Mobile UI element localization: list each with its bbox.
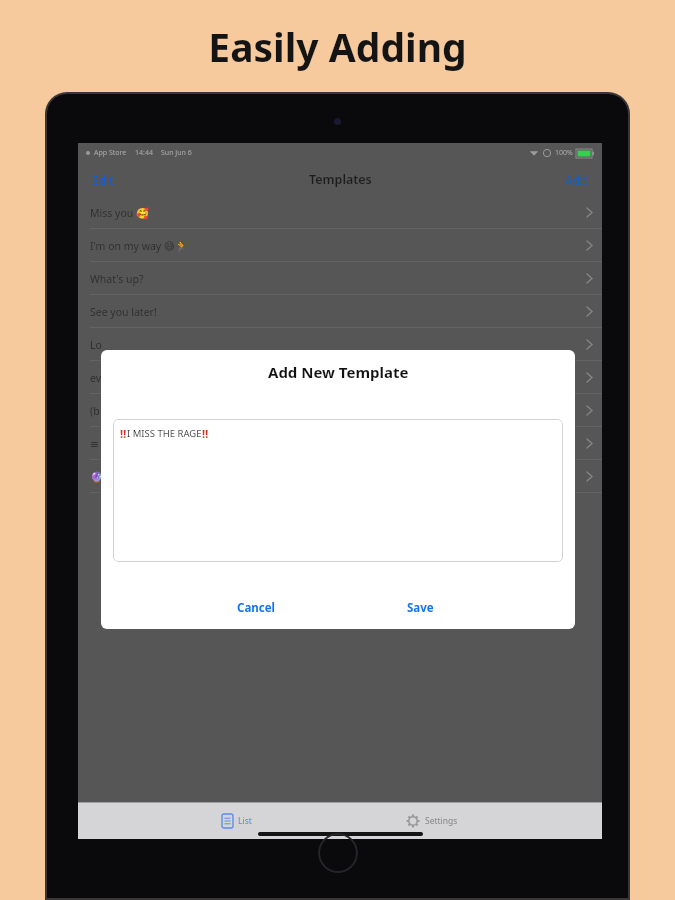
button[interactable]: Cancel (176, 600, 336, 616)
staticText: Easily Adding (208, 20, 467, 73)
staticText: ev (90, 371, 123, 385)
staticText: ‼️ (202, 426, 209, 441)
staticText: Add New Template (268, 362, 409, 382)
staticText: What's up? (90, 272, 144, 286)
staticText: Lo (90, 338, 144, 352)
staticText: Sun Jun 6 (161, 148, 192, 158)
button[interactable]: ‼️ (113, 419, 563, 562)
button[interactable]: ≡ (78, 427, 602, 460)
staticText: App Store (94, 148, 127, 158)
button[interactable]: Home (318, 833, 358, 873)
button[interactable]: Miss you 🥰 (78, 196, 602, 229)
button[interactable]: What's up? (78, 262, 602, 295)
button[interactable]: I'm on my way 😅🏃 (78, 229, 602, 262)
staticText: ‼️ (120, 426, 127, 441)
button[interactable]: 🔮 (78, 460, 602, 493)
staticText: I'm on my way 😅🏃 (90, 239, 188, 253)
button[interactable]: List (212, 810, 262, 832)
staticText: I MISS THE RAGE (127, 427, 202, 440)
staticText: Cancel (237, 600, 275, 616)
staticText: ≡ (90, 437, 110, 451)
staticText: 🔮 (90, 470, 114, 484)
button[interactable]: Add (557, 167, 596, 193)
button[interactable]: ev (78, 361, 602, 394)
button[interactable]: (b (78, 394, 602, 427)
staticText: Edit (92, 172, 114, 188)
button[interactable]: Settings (396, 810, 468, 832)
staticText: 100% (555, 148, 573, 158)
staticText: Add (565, 172, 588, 188)
staticText: (b (90, 404, 121, 418)
button[interactable]: Lo (78, 328, 602, 361)
button[interactable]: Edit (84, 167, 122, 193)
button[interactable]: See you later! (78, 295, 602, 328)
staticText: Templates (309, 171, 372, 188)
staticText: See you later! (90, 305, 157, 319)
staticText: 14:44 (135, 148, 153, 158)
staticText: Settings (425, 815, 458, 827)
staticText: List (238, 815, 252, 827)
staticText: Miss you 🥰 (90, 206, 150, 220)
staticText: Save (407, 600, 434, 616)
button[interactable]: Save (340, 600, 500, 616)
